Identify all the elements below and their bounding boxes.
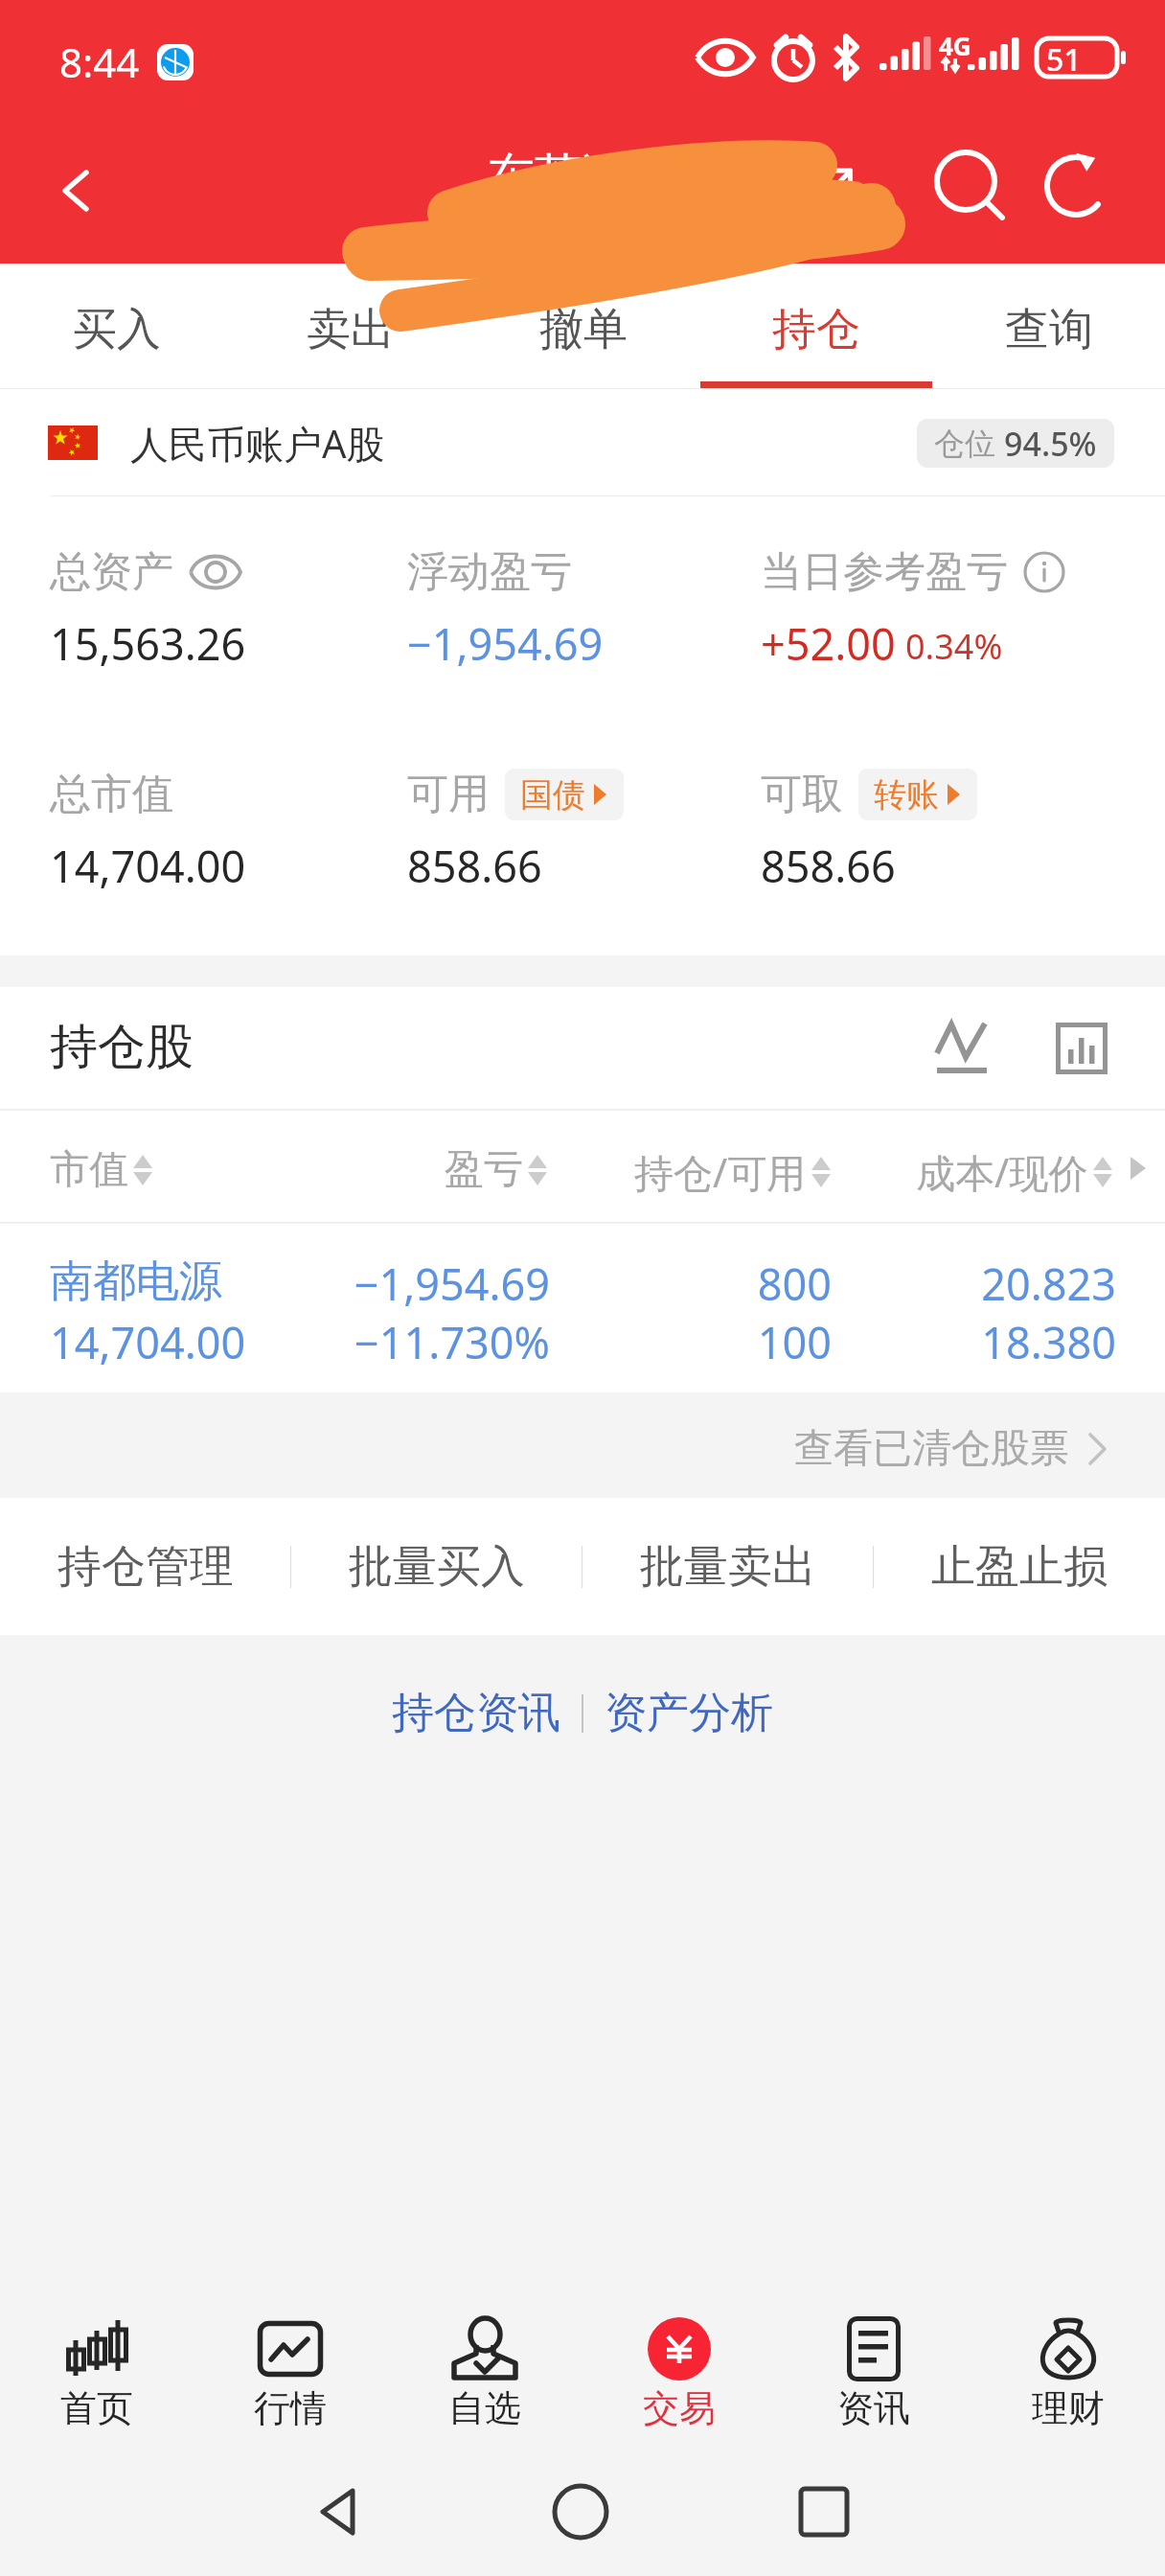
staticText: 止盈止损 [931,1539,1108,1595]
button[interactable]: 查看已清仓股票 [0,1392,1165,1498]
staticText: 0.34% [905,623,1003,670]
button[interactable]: Recent apps [766,2454,881,2569]
button[interactable]: 理财 [971,2286,1165,2439]
button[interactable]: Back [282,2454,397,2569]
staticText: 14,704.00 [50,837,246,895]
staticText: 4G [939,29,971,62]
button[interactable]: 买入 [0,264,234,389]
staticText: 盈亏 [445,1145,523,1195]
staticText: 可取 [761,769,843,820]
staticText: 总资产 [50,546,173,598]
staticText: 查看已清仓股票 [794,1424,1069,1474]
staticText: −11.730% [0,1313,550,1371]
staticText: +52.00 [761,614,896,673]
button[interactable]: Home [523,2454,638,2569]
button[interactable]: 首页 [0,2286,194,2439]
button[interactable]: 盈亏 [445,1145,549,1195]
staticText: 资讯 [837,2385,910,2431]
button[interactable]: 国债 [505,769,624,820]
staticText: 持仓管理 [57,1539,234,1595]
staticText: −1,954.69 [407,614,604,673]
staticText: 交易 [643,2385,716,2431]
staticText: 理财 [1032,2385,1105,2431]
button[interactable]: 撤单 [467,264,699,389]
staticText: 20.823 [0,1254,1116,1313]
button[interactable]: 仓位 [917,419,1114,468]
staticText: 持仓/可用 [634,1145,807,1199]
staticText: 仓位 [934,425,995,463]
staticText: 18.380 [0,1313,1116,1371]
staticText: 批量卖出 [640,1539,816,1595]
staticText: 批量买入 [349,1539,525,1595]
staticText: 51 [1046,38,1082,80]
button[interactable]: 持仓/可用 [634,1145,833,1199]
staticText: 14,704.00 [50,1313,246,1371]
button[interactable]: 查询 [932,264,1165,389]
staticText: 总市值 [50,769,173,820]
button[interactable]: Information [1023,551,1065,593]
staticText: 持仓 [772,302,860,357]
button[interactable]: 持仓管理 [0,1498,291,1635]
button[interactable]: 批量买入 [291,1498,582,1635]
staticText: 转账 [874,774,939,816]
staticText: 行情 [254,2385,327,2431]
staticText: 撤单 [539,302,628,357]
button[interactable]: Back [21,134,134,247]
button[interactable]: 南都电源 [0,1224,1165,1392]
staticText: 成本/现价 [916,1145,1088,1199]
button[interactable]: 批量卖出 [582,1498,874,1635]
button[interactable]: Search [918,135,1023,241]
button[interactable]: Toggle balance visibility [189,551,242,593]
staticText: 国债 [520,774,585,816]
button[interactable]: 资讯 [776,2286,971,2439]
button[interactable]: Open in new window [781,135,886,241]
staticText: 持仓资讯 [392,1687,560,1739]
staticText: 858.66 [761,837,896,895]
button[interactable]: Refresh [1023,135,1129,241]
staticText: 94.5% [1004,422,1097,466]
staticText: 卖出 [307,302,395,357]
button[interactable]: 资产分析 [583,1673,794,1753]
staticText: 资产分析 [605,1687,773,1739]
staticText: 市值 [50,1145,128,1195]
staticText: 持仓股 [50,1017,194,1077]
staticText: 东莞证券 [487,147,678,207]
button[interactable]: 行情 [194,2286,387,2439]
button[interactable]: 市值 [50,1145,154,1195]
button[interactable]: 卖出 [234,264,467,389]
button[interactable]: 成本/现价 [916,1145,1114,1199]
button[interactable]: 持仓资讯 [371,1673,582,1753]
button[interactable]: Bar chart view [1056,1023,1108,1074]
button[interactable]: 自选 [387,2286,582,2439]
staticText: 800 [0,1254,832,1313]
staticText: 买入 [73,302,161,357]
staticText: 首页 [60,2385,133,2431]
staticText: −1,954.69 [0,1254,550,1313]
staticText: 浮动盈亏 [407,546,572,598]
staticText: 查询 [1005,302,1093,357]
staticText: 15,563.26 [50,614,246,673]
button[interactable]: 持仓 [699,264,932,389]
staticText: 8:44 [59,34,140,89]
staticText: 人民币账户A股 [130,417,385,470]
button[interactable]: 止盈止损 [874,1498,1165,1635]
button[interactable]: Line chart view [935,1022,989,1077]
staticText: 南都电源 [50,1254,222,1309]
staticText: 可用 [407,769,490,820]
staticText: 858.66 [407,837,542,895]
staticText: 自选 [448,2385,521,2431]
button[interactable]: 交易 [582,2286,776,2439]
staticText: 当日参考盈亏 [761,546,1008,598]
button[interactable]: 转账 [858,769,977,820]
staticText: 100 [0,1313,832,1371]
